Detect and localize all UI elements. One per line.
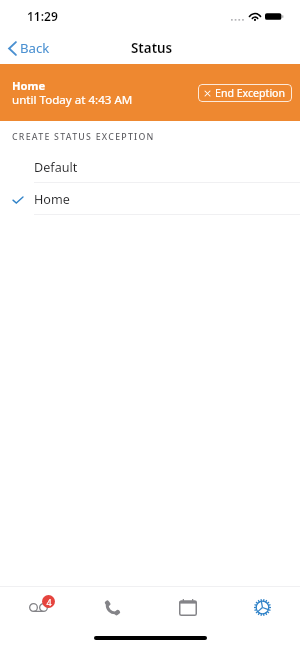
staticText: Home — [34, 191, 70, 208]
button[interactable]: Phone — [75, 587, 150, 627]
staticText: Home — [12, 78, 46, 93]
button[interactable]: Back — [0, 35, 60, 61]
staticText: CREATE STATUS EXCEPTION — [12, 131, 155, 143]
button[interactable]: Voicemail — [0, 587, 75, 627]
staticText: Default — [34, 159, 78, 176]
button[interactable]: End Exception — [198, 84, 292, 102]
staticText: 4 — [46, 596, 52, 608]
button[interactable]: Settings — [225, 587, 300, 627]
staticText: End Exception — [215, 86, 286, 100]
staticText: 11:29 — [27, 8, 58, 24]
staticText: Status — [131, 39, 173, 57]
button[interactable]: Calendar — [150, 587, 225, 627]
staticText: until Today at 4:43 AM — [12, 92, 133, 108]
button[interactable]: Default — [0, 151, 300, 182]
button[interactable]: Home — [0, 183, 300, 214]
staticText: Back — [20, 39, 50, 57]
